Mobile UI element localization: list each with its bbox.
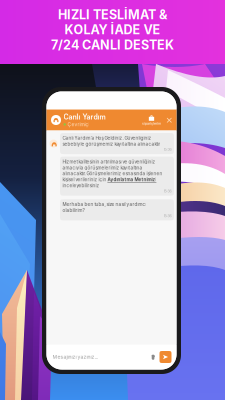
staticText: 15:36 xyxy=(164,189,172,193)
staticText: HIZLI TESLİMAT & xyxy=(58,7,167,22)
button[interactable]: Gönder xyxy=(159,351,171,363)
staticText: Canlı Yardım'a Hoş Geldiniz. Güvenliğini… xyxy=(62,135,151,141)
staticText: alınacaktır. Görüşmelerimiz esnasında iş… xyxy=(62,171,162,176)
staticText: 7/24 CANLI DESTEK xyxy=(51,37,174,52)
button[interactable]: Mesajınızı yazınız... xyxy=(46,354,150,360)
staticText: amacıyla görüşmelerimiz kayıt altına xyxy=(62,165,142,170)
staticText: siparişlerim xyxy=(142,121,161,126)
staticText: sebebiyle görüşmemiz kayıt altına alınac… xyxy=(62,141,160,147)
button[interactable]: Dosya ekle xyxy=(150,354,156,360)
button[interactable]: Kapat xyxy=(162,112,175,128)
staticText: Çevrimiçi xyxy=(67,121,89,127)
staticText: Hizmet kalitesinin artırılması ve güvenl… xyxy=(62,159,155,164)
staticText: Canlı Yardım xyxy=(63,113,105,121)
staticText: 15:36 xyxy=(164,214,172,218)
staticText: olabilirim? xyxy=(62,208,84,213)
staticText: inceleyebilirsiniz xyxy=(62,183,99,188)
staticText: Merhaba ben tuba, size nasıl yardımcı xyxy=(62,202,146,207)
staticText: Aydınlatma Metnimizi xyxy=(107,177,156,182)
staticText: KOLAY İADE VE xyxy=(64,22,160,37)
staticText: kişisel verileriniz için xyxy=(62,177,107,182)
staticText: 15:36 xyxy=(164,147,172,152)
button[interactable]: siparişlerim xyxy=(140,114,162,126)
staticText: Mesajınızı yazınız... xyxy=(52,354,97,360)
